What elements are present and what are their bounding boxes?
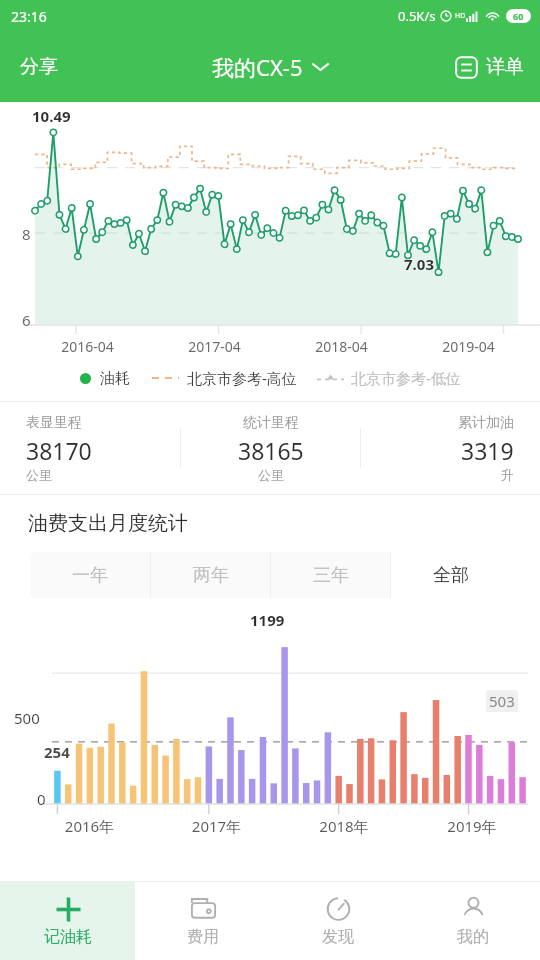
staticText: 三年 [313,564,349,587]
staticText: 2019-04 [405,337,532,356]
staticText: 油耗 [100,369,130,388]
staticText: 费用 [187,927,219,947]
staticText: 2017-04 [151,337,278,356]
button[interactable]: 记油耗 [0,882,135,960]
staticText: 2016年 [26,816,153,836]
staticText: 北京市参考-低位 [351,368,461,388]
button[interactable]: 详单 [439,32,540,102]
staticText: 1199 [250,610,285,630]
button[interactable]: 费用 [135,882,270,960]
button[interactable]: 一年 [30,552,150,598]
staticText: 2017年 [153,816,280,836]
button[interactable]: 分享 [0,32,78,102]
staticText: HD [455,11,466,21]
staticText: 2018-04 [278,337,405,356]
button[interactable]: 我的CX-5 [202,42,339,92]
other: 详单 [455,56,478,79]
staticText: 全部 [433,564,469,587]
staticText: 60 [513,10,524,22]
staticText: 6 [22,310,31,330]
staticText: 0 [37,789,46,809]
staticText: 分享 [20,55,58,79]
staticText: 38170 [26,435,92,466]
staticText: 2018年 [280,816,408,836]
button[interactable]: 三年 [271,552,390,598]
staticText: 7.03 [404,254,434,274]
staticText: 23:16 [11,7,47,26]
staticText: 38165 [238,435,304,466]
staticText: 统计里程 [243,414,299,432]
button[interactable]: 我的 [405,882,540,960]
button[interactable]: 两年 [151,552,270,598]
staticText: 升 [501,467,514,483]
staticText: 北京市参考-高位 [187,368,297,388]
button[interactable]: 全部 [391,552,510,598]
staticText: 10.49 [32,106,71,126]
staticText: 记油耗 [44,927,92,947]
staticText: 公里 [26,467,52,483]
staticText: 0.5K/s [398,7,436,25]
staticText: 我的 [457,927,489,947]
staticText: 累计加油 [458,414,514,432]
staticText: 8 [22,224,31,244]
staticText: 254 [44,742,70,762]
staticText: 一年 [72,564,108,587]
staticText: 发现 [322,927,354,947]
staticText: 详单 [486,55,524,79]
staticText: 2019年 [408,816,536,836]
button[interactable]: 发现 [270,882,405,960]
staticText: 油费支出月度统计 [28,511,188,536]
staticText: 公里 [258,467,284,483]
staticText: 2016-04 [24,337,151,356]
staticText: 3319 [461,435,514,466]
staticText: 我的CX-5 [212,52,303,82]
staticText: 表显里程 [26,414,82,432]
staticText: 两年 [193,564,229,587]
staticText: 500 [14,708,40,728]
staticText: 503 [489,691,515,711]
